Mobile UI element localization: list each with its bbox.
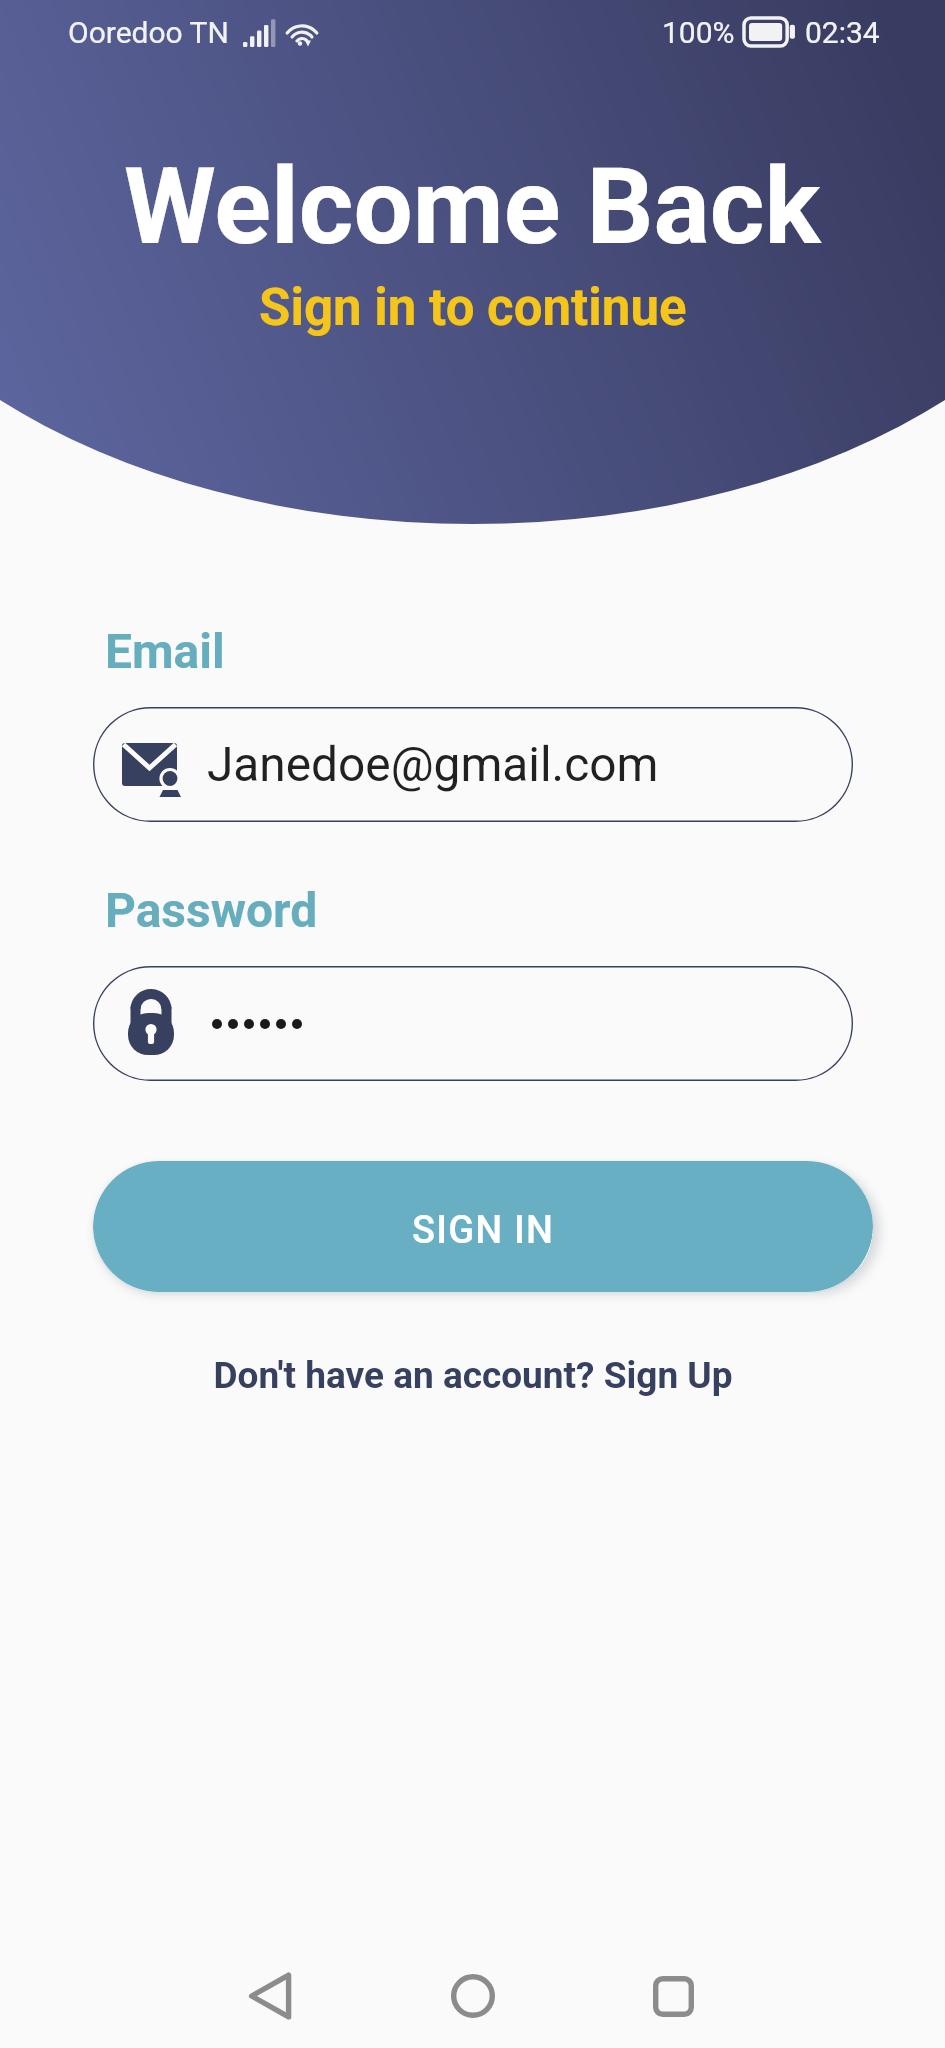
staticText: 02:34	[805, 15, 880, 50]
button[interactable]: Don't have an account? Sign Up	[203, 1348, 743, 1403]
staticText: Welcome Back	[124, 146, 821, 269]
button[interactable]: Recents	[573, 1944, 773, 2048]
staticText: SIGN IN	[412, 1208, 555, 1253]
staticText: Don't have an account? Sign Up	[213, 1354, 733, 1397]
staticText: Email	[105, 623, 225, 679]
button[interactable]: Back	[171, 1944, 371, 2048]
staticText: 100%	[662, 15, 735, 50]
button[interactable]: Home	[373, 1944, 573, 2048]
button[interactable]: SIGN IN	[93, 1161, 873, 1292]
staticText: Sign in to continue	[259, 278, 687, 338]
staticText: Ooredoo TN	[68, 15, 229, 50]
staticText: Password	[105, 882, 318, 938]
button[interactable]	[93, 966, 853, 1081]
button[interactable]: Janedoe@gmail.com	[93, 707, 853, 822]
staticText: Janedoe@gmail.com	[207, 737, 659, 793]
